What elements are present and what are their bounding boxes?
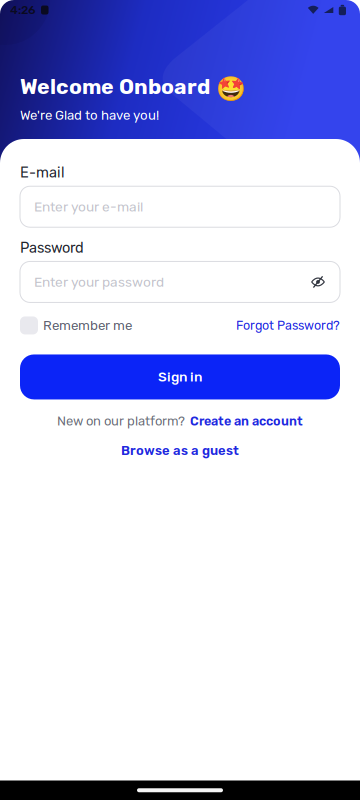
staticText: Sign in xyxy=(158,369,202,385)
button[interactable]: Sign in xyxy=(20,354,340,399)
button[interactable]: Browse as a guest xyxy=(121,443,239,458)
staticText: Create an account xyxy=(190,414,303,429)
staticText: E-mail xyxy=(20,164,65,181)
staticText: Forgot Password? xyxy=(236,318,340,333)
button[interactable]: Create an account xyxy=(190,414,303,429)
button[interactable]: Forgot Password? xyxy=(236,318,340,333)
button[interactable]: Remember me xyxy=(20,316,132,334)
staticText: We're Glad to have you! xyxy=(20,107,159,123)
staticText: Browse as a guest xyxy=(121,443,239,458)
staticText: Password xyxy=(20,239,84,256)
button[interactable]: Enter your password xyxy=(20,261,340,302)
staticText: 🤩 xyxy=(216,75,246,102)
staticText: Welcome Onboard xyxy=(20,74,210,99)
staticText: 4:26 xyxy=(10,3,36,17)
button[interactable]: Enter your e-mail xyxy=(20,186,340,227)
staticText: Enter your password xyxy=(34,274,164,290)
button[interactable]: Show password xyxy=(311,276,325,288)
staticText: New on our platform? xyxy=(57,413,185,429)
staticText: Enter your e-mail xyxy=(34,199,143,215)
staticText: Remember me xyxy=(43,317,132,333)
